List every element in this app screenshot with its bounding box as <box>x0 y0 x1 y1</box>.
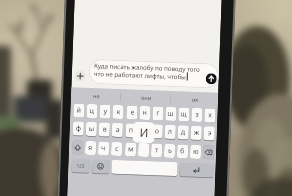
button[interactable]: ы <box>86 122 97 136</box>
button[interactable] <box>205 73 217 85</box>
button[interactable]: не <box>71 89 121 103</box>
staticText: их <box>192 96 199 104</box>
button[interactable]: м <box>125 142 136 157</box>
staticText: я <box>88 143 93 153</box>
staticText: г <box>156 108 161 118</box>
button[interactable]: ч <box>98 141 109 156</box>
button[interactable] <box>75 70 86 82</box>
staticText: у <box>103 106 108 116</box>
button[interactable]: п <box>125 123 137 138</box>
staticText: х <box>208 110 213 120</box>
staticText: з <box>195 110 200 120</box>
button[interactable]: 123 <box>71 158 90 173</box>
staticText: не <box>93 92 100 100</box>
button[interactable]: т <box>151 143 162 158</box>
staticText: ь <box>168 146 172 156</box>
button[interactable] <box>91 159 110 174</box>
button[interactable]: н <box>139 106 151 120</box>
staticText: й <box>76 105 82 116</box>
button[interactable] <box>138 124 150 138</box>
button[interactable] <box>138 143 149 157</box>
button[interactable]: ф <box>73 121 84 136</box>
button[interactable]: щ <box>178 107 190 122</box>
button[interactable] <box>111 160 178 176</box>
staticText: ф <box>76 123 82 134</box>
staticText: д <box>181 127 186 137</box>
button[interactable]: з <box>191 108 203 122</box>
staticText: к <box>116 107 121 117</box>
button[interactable]: в <box>99 122 110 137</box>
button[interactable]: г <box>152 106 164 121</box>
button[interactable]: б <box>177 144 188 159</box>
staticText: 123 <box>76 162 85 169</box>
staticText: ш <box>167 109 175 119</box>
staticText: м <box>128 144 134 155</box>
staticText: ы <box>89 124 95 134</box>
button[interactable]: а <box>112 123 123 137</box>
button[interactable]: д <box>177 125 189 140</box>
staticText: в <box>103 124 107 134</box>
staticText: б <box>180 146 185 156</box>
staticText: э <box>208 128 212 138</box>
button[interactable]: о <box>151 124 163 139</box>
button[interactable] <box>179 162 214 177</box>
staticText: щ <box>180 109 188 119</box>
staticText: п <box>129 125 134 136</box>
button[interactable]: их <box>170 93 218 107</box>
staticText: ж <box>194 128 200 138</box>
button[interactable]: л <box>164 125 176 139</box>
staticText: ю <box>193 147 199 157</box>
staticText: они <box>141 94 152 102</box>
staticText: ч <box>101 143 106 154</box>
button[interactable]: к <box>112 105 124 119</box>
button[interactable]: х <box>204 108 216 122</box>
button[interactable] <box>203 145 214 159</box>
button[interactable] <box>88 59 219 89</box>
staticText: И <box>139 125 149 141</box>
staticText: Куда писать жалобу по поводу того <box>94 61 200 73</box>
button[interactable]: они <box>121 91 171 105</box>
button[interactable]: й <box>73 103 85 118</box>
button[interactable]: ж <box>190 126 202 140</box>
button[interactable]: ь <box>164 144 175 158</box>
button[interactable]: с <box>111 142 122 156</box>
staticText: с <box>115 144 119 154</box>
staticText: ц <box>89 106 95 116</box>
button[interactable]: у <box>99 104 111 119</box>
staticText: л <box>168 127 173 137</box>
staticText: что не работают лифты, чтобы <box>94 69 187 80</box>
button[interactable]: я <box>85 141 96 155</box>
staticText: а <box>116 125 120 135</box>
button[interactable] <box>72 140 83 155</box>
staticText: о <box>155 126 160 136</box>
button[interactable]: е <box>126 105 138 120</box>
button[interactable]: э <box>203 126 215 140</box>
button[interactable]: ю <box>190 145 201 159</box>
button[interactable]: ц <box>86 104 98 118</box>
staticText: т <box>155 145 159 155</box>
staticText: е <box>130 107 135 117</box>
staticText: н <box>142 108 148 118</box>
button[interactable]: ш <box>165 107 177 121</box>
